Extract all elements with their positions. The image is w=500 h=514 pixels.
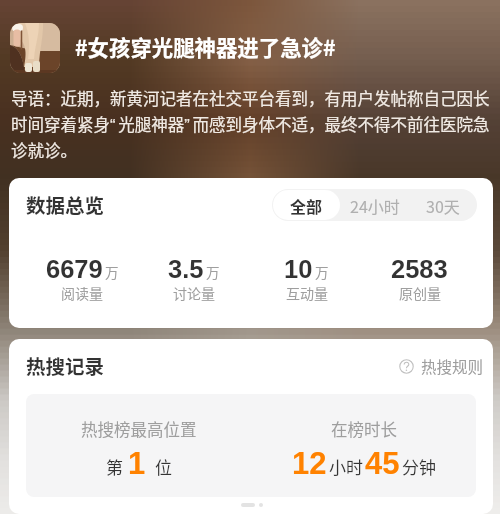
- staticText: 2583: [391, 255, 448, 283]
- button[interactable]: 24小时: [342, 190, 408, 220]
- button[interactable]: 6679: [26, 255, 138, 300]
- staticText: 讨论量: [173, 283, 215, 303]
- staticText: 在榜时长: [331, 417, 397, 441]
- staticText: 阅读量: [61, 283, 103, 303]
- staticText: 全部: [290, 194, 323, 217]
- staticText: #女孩穿光腿神器进了急诊#: [75, 31, 336, 62]
- staticText: 数据总览: [26, 190, 105, 218]
- staticText: 24小时: [350, 194, 400, 217]
- button[interactable]: 全部: [273, 190, 340, 220]
- staticText: 10: [284, 255, 313, 283]
- button[interactable]: #女孩穿光腿神器进了急诊#: [10, 23, 336, 73]
- staticText: 6679: [46, 255, 103, 283]
- staticText: 原创量: [399, 283, 441, 303]
- button[interactable]: 3.5: [138, 255, 250, 300]
- button[interactable]: 在榜时长: [251, 394, 476, 481]
- staticText: 万: [105, 262, 119, 282]
- staticText: 万: [315, 262, 329, 282]
- staticText: 3.5: [168, 255, 204, 283]
- button[interactable]: 热搜规则: [399, 353, 484, 379]
- staticText: 45: [365, 446, 400, 481]
- staticText: 30天: [426, 194, 460, 217]
- staticText: 热搜记录: [26, 351, 105, 379]
- button[interactable]: 10: [250, 255, 363, 300]
- other: 热搜规则: [399, 359, 414, 374]
- staticText: 热搜榜最高位置: [81, 417, 197, 441]
- staticText: 第: [106, 454, 123, 479]
- staticText: 1: [128, 446, 146, 481]
- button[interactable]: 热搜榜最高位置: [26, 394, 251, 481]
- staticText: 热搜规则: [421, 355, 484, 377]
- staticText: 位: [155, 454, 172, 479]
- staticText: 万: [206, 262, 220, 282]
- staticText: 小时: [329, 454, 363, 479]
- staticText: 12: [292, 446, 327, 481]
- button[interactable]: 30天: [410, 190, 476, 220]
- button[interactable]: 2583: [363, 255, 476, 300]
- staticText: 导语：近期，新黄河记者在社交平台看到，有用户发帖称自己因长时间穿着紧身“光腿神器…: [11, 84, 495, 162]
- staticText: 分钟: [402, 454, 436, 479]
- staticText: 互动量: [286, 283, 328, 303]
